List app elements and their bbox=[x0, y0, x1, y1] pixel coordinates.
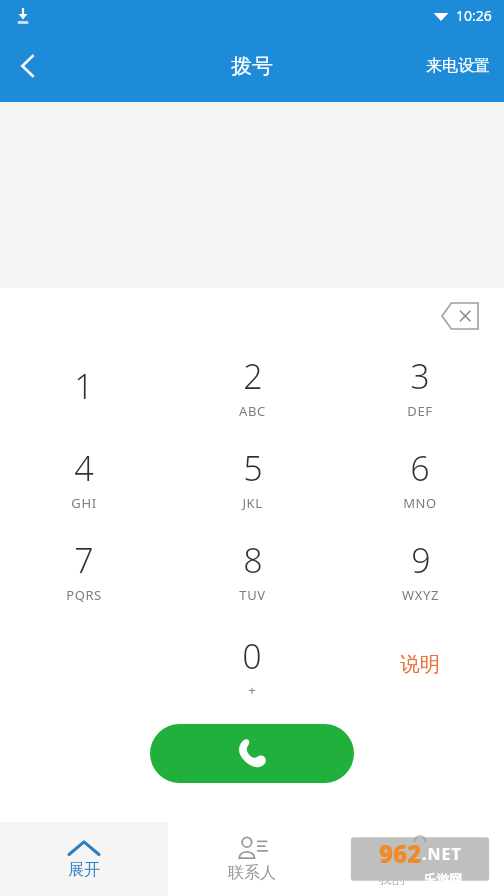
staticText: 8 bbox=[243, 537, 263, 583]
staticText: 乐游网 bbox=[423, 871, 462, 885]
button[interactable]: 展开 bbox=[0, 822, 168, 896]
staticText: 5 bbox=[243, 445, 263, 491]
button[interactable]: 5 bbox=[168, 436, 336, 528]
staticText: DEF bbox=[407, 402, 433, 420]
button[interactable]: 联系人 bbox=[168, 822, 336, 896]
staticText: 9 bbox=[411, 537, 431, 583]
button[interactable]: 0 bbox=[168, 620, 336, 712]
button[interactable]: 8 bbox=[168, 528, 336, 620]
staticText: 10:26 bbox=[456, 6, 492, 25]
staticText: WXYZ bbox=[402, 586, 439, 604]
staticText: 2 bbox=[243, 353, 263, 399]
staticText: 联系人 bbox=[228, 863, 276, 883]
button[interactable]: 9 bbox=[336, 528, 504, 620]
staticText: MNO bbox=[403, 494, 437, 512]
staticText: ABC bbox=[239, 402, 266, 420]
staticText: 说明 bbox=[400, 652, 440, 677]
button[interactable]: 6 bbox=[336, 436, 504, 528]
button[interactable]: Backspace bbox=[438, 294, 482, 338]
button[interactable]: 7 bbox=[0, 528, 168, 620]
button[interactable]: 4 bbox=[0, 436, 168, 528]
staticText: JKL bbox=[242, 494, 263, 512]
staticText: + bbox=[248, 681, 256, 699]
staticText: 4 bbox=[74, 445, 94, 491]
staticText: 来电设置 bbox=[426, 56, 490, 76]
button[interactable]: 3 bbox=[336, 344, 504, 436]
button[interactable]: 962 bbox=[336, 822, 504, 896]
staticText: GHI bbox=[71, 494, 97, 512]
button[interactable]: 来电设置 bbox=[412, 42, 504, 90]
staticText: 展开 bbox=[68, 860, 100, 880]
button[interactable]: 1 bbox=[0, 344, 168, 436]
button[interactable]: Call bbox=[150, 724, 354, 783]
staticText: 拨号 bbox=[231, 53, 273, 79]
staticText: 962 bbox=[379, 837, 422, 870]
staticText: PQRS bbox=[66, 586, 102, 604]
staticText: 6 bbox=[410, 445, 430, 491]
staticText: 0 bbox=[242, 633, 262, 679]
staticText: .NET bbox=[422, 843, 462, 865]
button[interactable]: 2 bbox=[168, 344, 336, 436]
staticText: 7 bbox=[74, 537, 94, 583]
staticText: TUV bbox=[239, 586, 266, 604]
staticText: 1 bbox=[74, 363, 94, 409]
button[interactable]: Back bbox=[0, 38, 56, 94]
button[interactable]: 说明 bbox=[336, 620, 504, 712]
staticText: 3 bbox=[410, 353, 430, 399]
staticText: 我的 bbox=[379, 871, 405, 885]
